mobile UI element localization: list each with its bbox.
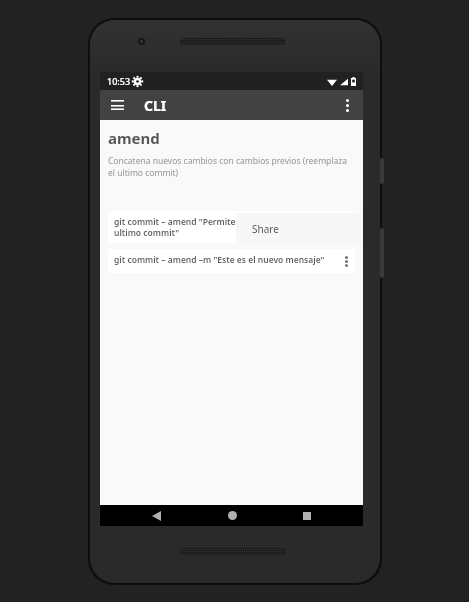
staticText: git commit – amend –m "Este es el nuevo … <box>114 254 339 266</box>
staticText: Concatena nuevos cambios con cambios pre… <box>108 155 355 179</box>
button[interactable]: Back <box>136 505 176 526</box>
button[interactable]: Share <box>236 213 362 245</box>
staticText: git commit – amend "Permite agregar y re… <box>114 216 339 238</box>
button[interactable]: Home <box>212 505 252 526</box>
staticText: CLI <box>144 96 167 115</box>
button[interactable]: Recent apps <box>287 505 327 526</box>
button[interactable]: More options <box>339 254 353 268</box>
staticText: Share <box>252 222 279 236</box>
button[interactable]: More options <box>336 94 358 116</box>
button[interactable]: git commit – amend –m "Este es el nuevo … <box>108 249 355 273</box>
button[interactable]: git commit – amend "Permite agregar y re… <box>108 211 355 243</box>
staticText: 10:53 <box>107 75 131 87</box>
button[interactable]: Open navigation drawer <box>106 94 128 116</box>
staticText: amend <box>108 128 160 148</box>
